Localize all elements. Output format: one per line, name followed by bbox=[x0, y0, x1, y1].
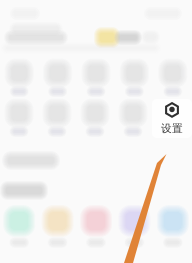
button[interactable]: 应用 bbox=[38, 100, 76, 137]
button[interactable]: 应用 bbox=[115, 205, 154, 248]
button[interactable]: 应用 bbox=[77, 60, 115, 97]
staticText: 设置 bbox=[161, 122, 183, 135]
button[interactable]: 应用 bbox=[154, 205, 192, 248]
button[interactable]: 应用 bbox=[76, 100, 114, 137]
button[interactable]: 应用 bbox=[0, 100, 38, 137]
button[interactable]: 应用 bbox=[114, 100, 152, 137]
button[interactable]: 应用 bbox=[115, 60, 154, 97]
button[interactable]: 应用 bbox=[77, 205, 115, 248]
button[interactable]: 应用 bbox=[0, 205, 38, 248]
button[interactable]: 应用 bbox=[154, 60, 192, 97]
button[interactable]: 应用 bbox=[38, 205, 77, 248]
button[interactable]: 设置 bbox=[152, 99, 192, 138]
button[interactable]: 应用 bbox=[0, 60, 38, 97]
button[interactable]: 应用 bbox=[38, 60, 77, 97]
